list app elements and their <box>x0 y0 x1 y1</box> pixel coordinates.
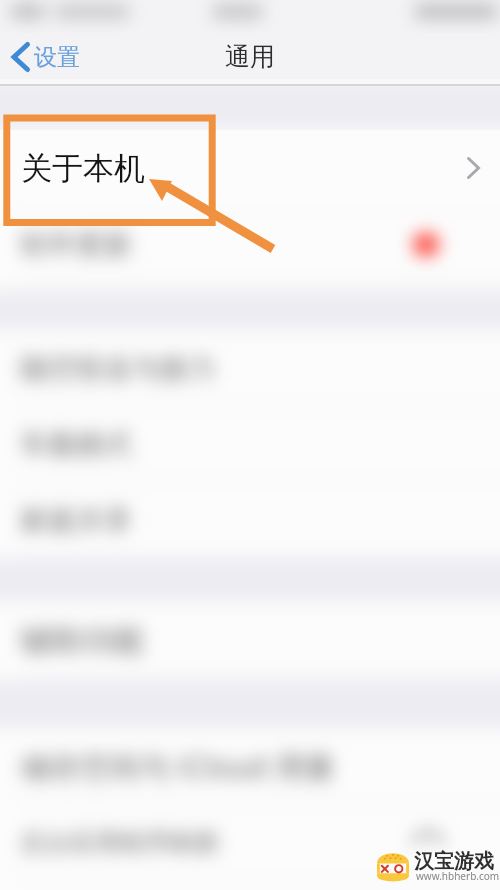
staticText: 软件更新 <box>20 227 132 262</box>
button[interactable]: 后台应用程序刷新 <box>0 804 500 890</box>
staticText: 关于本机 <box>21 149 145 188</box>
staticText: 后台应用程序刷新 <box>20 827 220 858</box>
staticText: 汉宝游戏 <box>414 849 494 874</box>
staticText: 设置 <box>34 43 80 72</box>
staticText: 隔空投送与接力 <box>20 351 216 386</box>
staticText: 储存空间与 iCloud 用量 <box>20 746 336 787</box>
staticText: 关于本机 <box>20 151 132 186</box>
button[interactable]: 家庭共享 <box>0 482 500 558</box>
staticText: 家庭共享 <box>20 503 132 538</box>
button[interactable]: 辅助功能 <box>0 602 500 680</box>
staticText: 通用 <box>225 41 275 72</box>
button[interactable]: 关于本机 <box>0 130 500 206</box>
button[interactable]: 关于本机 <box>0 130 500 206</box>
staticText: 辅助功能 <box>20 621 144 660</box>
button[interactable]: 车载模式 <box>0 406 500 482</box>
staticText: www.hbherb.com <box>416 869 500 883</box>
button[interactable]: 隔空投送与接力 <box>0 330 500 406</box>
button[interactable]: 储存空间与 iCloud 用量 <box>0 728 500 804</box>
button[interactable]: 软件更新 <box>0 206 500 290</box>
staticText: 车载模式 <box>20 427 132 462</box>
button[interactable]: 设置 <box>11 42 80 72</box>
